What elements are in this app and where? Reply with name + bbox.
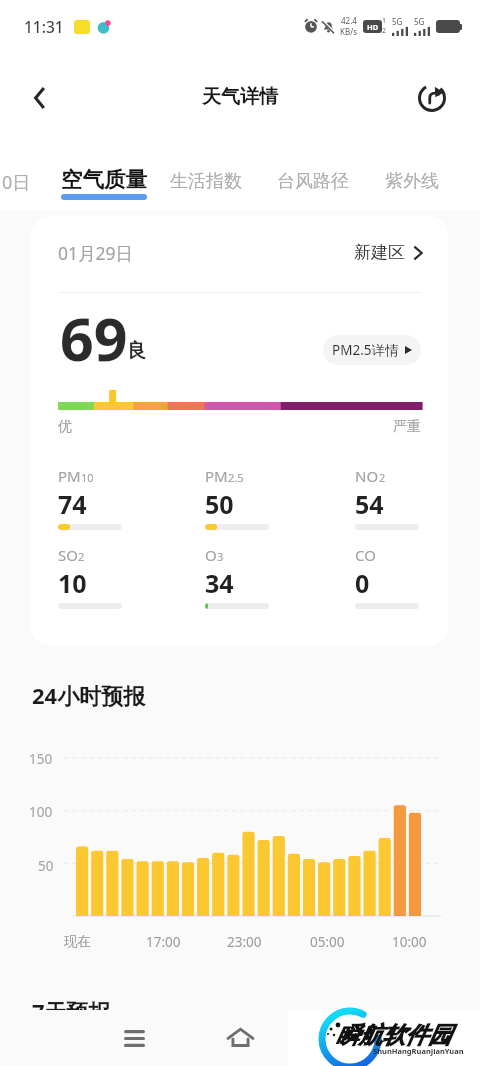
button[interactable]: 新建区 — [350, 238, 429, 267]
staticText: 23:00 — [227, 933, 262, 951]
staticText: 74 — [58, 487, 87, 521]
staticText: 24小时预报 — [32, 680, 146, 710]
staticText: NO — [355, 466, 379, 486]
staticText: 良 — [127, 339, 146, 363]
staticText: SO — [58, 545, 78, 565]
staticText: 42.4 — [341, 15, 357, 26]
staticText: 新建区 — [354, 242, 405, 263]
staticText: 5G — [414, 16, 425, 27]
button[interactable]: 紫外线 — [381, 166, 443, 197]
staticText: PM — [205, 466, 228, 486]
staticText: 1 — [382, 16, 387, 26]
button[interactable]: PM2.5详情 — [323, 335, 421, 365]
staticText: 50 — [205, 487, 234, 521]
staticText: 50 — [38, 857, 54, 875]
button[interactable]: Refresh — [410, 76, 454, 120]
staticText: 天气详情 — [202, 85, 278, 109]
staticText: CO — [355, 545, 376, 565]
staticText: 69 — [60, 298, 128, 378]
staticText: 2 — [382, 26, 387, 36]
staticText: PM — [58, 466, 81, 486]
staticText: 空气质量 — [61, 166, 147, 193]
staticText: ShunHangRuanJianYuan — [373, 1046, 464, 1056]
staticText: 05:00 — [310, 933, 345, 951]
staticText: 150 — [29, 750, 53, 768]
staticText: PM2.5详情 — [332, 341, 399, 359]
button[interactable]: 0日 — [0, 166, 35, 199]
button[interactable]: 生活指数 — [166, 166, 246, 197]
staticText: 10 — [81, 470, 94, 485]
staticText: 17:00 — [146, 933, 181, 951]
staticText: 瞬航软件园 — [336, 1021, 451, 1050]
staticText: 0 — [355, 566, 370, 600]
button[interactable]: 台风路径 — [273, 166, 353, 197]
staticText: 54 — [355, 487, 384, 521]
staticText: HD — [367, 22, 379, 32]
staticText: 2.5 — [228, 470, 244, 485]
button[interactable]: Menu — [109, 1010, 159, 1066]
button[interactable]: Home — [215, 1010, 265, 1066]
staticText: O — [205, 545, 217, 565]
staticText: 3 — [217, 549, 224, 564]
staticText: 优 — [58, 418, 72, 436]
button[interactable]: Back — [18, 76, 62, 120]
staticText: 34 — [205, 566, 234, 600]
staticText: 0日 — [2, 170, 31, 195]
staticText: 2 — [379, 470, 386, 485]
staticText: 11:31 — [24, 16, 64, 37]
staticText: 2 — [78, 549, 85, 564]
staticText: 生活指数 — [170, 170, 242, 193]
staticText: 台风路径 — [277, 170, 349, 193]
staticText: 紫外线 — [385, 170, 439, 193]
staticText: 现在 — [64, 933, 91, 950]
staticText: 100 — [29, 803, 53, 821]
staticText: 7天预报 — [32, 996, 111, 1026]
staticText: 严重 — [393, 418, 421, 436]
staticText: 5G — [392, 16, 403, 27]
staticText: 01月29日 — [58, 241, 134, 265]
button[interactable]: 空气质量 — [61, 166, 147, 200]
staticText: KB/s — [340, 26, 357, 37]
staticText: 10:00 — [392, 933, 427, 951]
staticText: 10 — [58, 566, 87, 600]
